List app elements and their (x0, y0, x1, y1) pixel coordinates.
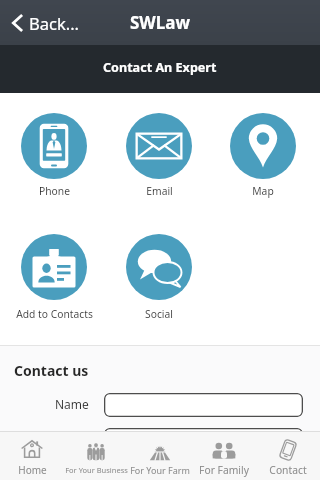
staticText: Email (58, 431, 89, 447)
button[interactable]: For Family (192, 432, 256, 480)
staticText: Home (18, 463, 47, 477)
staticText: Phone (39, 184, 70, 198)
staticText: Map (252, 184, 274, 198)
staticText: Contact An Expert (103, 59, 217, 76)
button[interactable]: Phone (2, 113, 106, 198)
staticText: For Family (199, 463, 249, 477)
button[interactable]: Map (211, 113, 315, 198)
staticText: SWLaw (130, 11, 191, 34)
staticText: Add to Contacts (16, 307, 93, 321)
staticText: Email (146, 184, 173, 198)
button[interactable]: Back... (8, 7, 83, 39)
staticText: Contact (269, 463, 307, 477)
staticText: Name (55, 396, 89, 412)
button[interactable]: For Your Farm (128, 432, 192, 480)
button[interactable]: For Your Business (64, 432, 128, 480)
button[interactable]: Social (107, 234, 211, 321)
staticText: Back... (29, 12, 79, 34)
staticText: Social (145, 307, 173, 321)
button[interactable]: Home (0, 432, 64, 480)
button[interactable]: Contact (256, 432, 320, 480)
staticText: For Your Business (65, 465, 128, 475)
staticText: Contact us (14, 361, 89, 380)
button[interactable] (104, 428, 303, 452)
staticText: For Your Farm (130, 464, 190, 476)
button[interactable]: Add to Contacts (2, 234, 106, 321)
button[interactable]: Email (107, 113, 211, 198)
button[interactable] (104, 393, 303, 417)
